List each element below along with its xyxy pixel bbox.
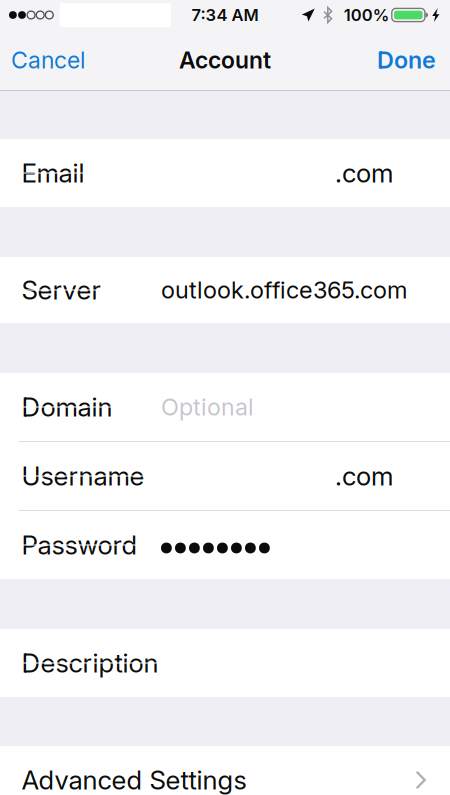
staticText: Domain (21, 391, 112, 423)
button[interactable]: Cancel (0, 30, 97, 90)
staticText: .com (335, 157, 393, 189)
staticText: Description (21, 647, 158, 679)
staticText: Password (21, 529, 137, 561)
staticText: Advanced Settings (21, 764, 246, 795)
staticText: Account (179, 46, 271, 74)
button[interactable]: Email (0, 139, 450, 207)
button[interactable]: Advanced Settings (0, 746, 450, 795)
button[interactable]: Done (365, 30, 450, 90)
staticText: Cancel (11, 46, 85, 74)
button[interactable]: Username (0, 442, 450, 510)
staticText: .com (335, 460, 393, 492)
staticText: 100% (344, 5, 390, 25)
staticText: Email (21, 157, 84, 189)
button[interactable]: Description (0, 629, 450, 697)
staticText: 7:34 AM (191, 5, 258, 25)
staticText: outlook.office365.com (161, 276, 407, 304)
staticText: Server (21, 274, 100, 306)
button[interactable]: Domain (0, 373, 450, 441)
staticText: Username (21, 460, 144, 492)
button[interactable]: Password (0, 511, 450, 579)
staticText: Optional (161, 393, 254, 421)
button[interactable]: Server (0, 257, 450, 323)
staticText: Done (377, 46, 436, 74)
